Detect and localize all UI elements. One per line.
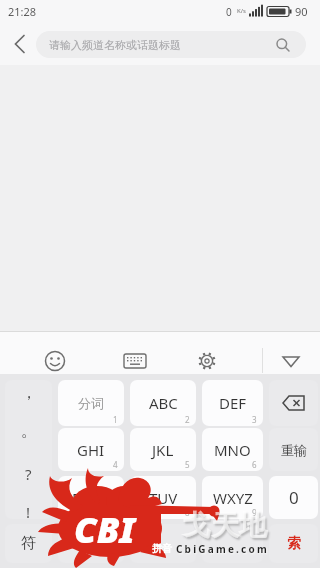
staticText: 分词 [78,395,104,411]
button[interactable]: TUV [130,476,196,519]
button[interactable]: ABC [130,380,196,426]
staticText: 符 [21,534,36,553]
staticText: 21:28 [8,4,37,19]
button[interactable] [130,524,196,563]
button[interactable]: 分词 [58,380,124,426]
button[interactable]: JKL [130,428,196,471]
button[interactable] [0,22,40,65]
button[interactable] [202,524,263,563]
button[interactable] [269,380,318,426]
staticText: TUV [149,488,178,508]
button[interactable] [120,347,150,375]
staticText: 5 [185,459,190,470]
staticText: ABC [149,393,178,413]
staticText: CbiGame.com [176,542,269,556]
staticText: PQRS [72,488,111,508]
button[interactable] [192,347,222,375]
staticText: MNO [214,440,251,460]
staticText: 123 [80,535,103,553]
button[interactable]: GHI [58,428,124,471]
staticText: 6 [252,459,257,470]
staticText: 2 [185,414,190,425]
staticText: 1 [113,414,118,425]
staticText: 4 [113,459,118,470]
staticText: 请输入频道名称或话题标题 [49,38,181,52]
staticText: ? [25,464,32,484]
button[interactable]: 符 [5,524,52,563]
staticText: 重输 [281,442,307,458]
button[interactable]: 0 [269,476,318,519]
staticText: 戈天地 [183,508,267,543]
staticText: ! [26,502,31,519]
button[interactable]: 索 [269,524,318,563]
button[interactable]: 请输入频道名称或话题标题 [36,31,306,58]
button[interactable] [278,350,304,372]
staticText: 索 [287,535,301,553]
button[interactable]: 重输 [269,428,318,471]
staticText: ， [21,383,37,403]
staticText: CBI [74,505,135,554]
staticText: 0 [226,5,232,19]
button[interactable] [40,347,70,375]
button[interactable]: PQRS [58,476,124,519]
staticText: JKL [152,440,174,460]
staticText: K/s [237,7,246,15]
staticText: 8 [185,507,190,518]
staticText: WXYZ [213,488,253,508]
button[interactable]: ， [5,380,52,519]
button[interactable]: MNO [202,428,263,471]
staticText: 。 [21,421,37,441]
button[interactable]: 123 [58,524,124,563]
staticText: 0 [289,486,299,509]
staticText: 拼音 [152,542,172,555]
staticText: DEF [219,393,247,413]
staticText: 90 [295,4,308,19]
button[interactable]: DEF [202,380,263,426]
staticText: 3 [252,414,257,425]
staticText: GHI [77,440,105,460]
staticText: 9 [252,507,257,518]
button[interactable]: WXYZ [202,476,263,519]
